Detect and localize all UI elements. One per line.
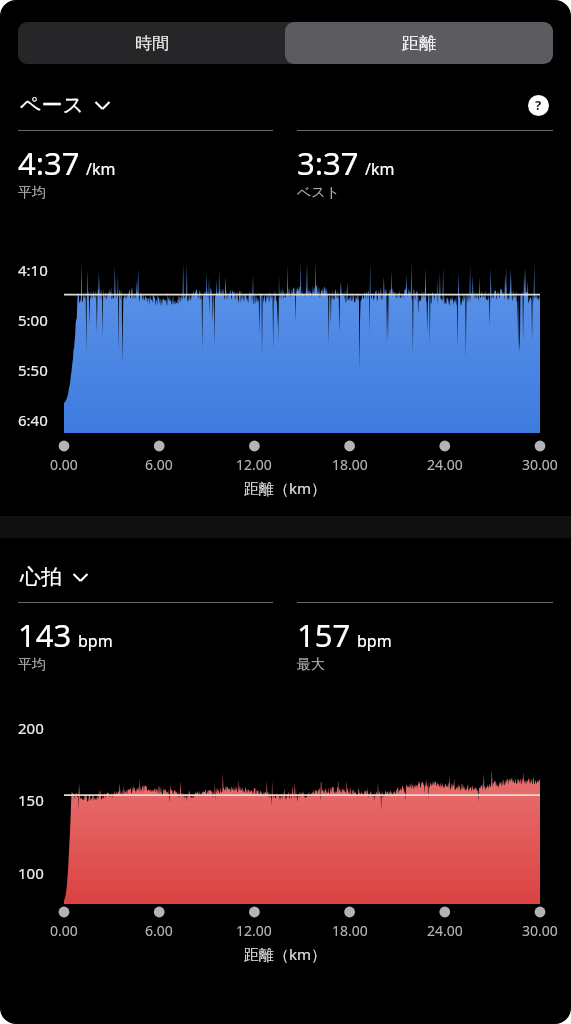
staticText: 0.00 xyxy=(50,455,78,474)
staticText: ベスト xyxy=(297,184,340,202)
staticText: ペース xyxy=(20,92,84,118)
staticText: 6:40 xyxy=(18,410,48,430)
button[interactable]: 157 xyxy=(297,602,553,674)
staticText: bpm xyxy=(357,630,392,652)
staticText: 143 xyxy=(18,614,72,656)
button[interactable]: 4:37 xyxy=(18,130,273,202)
button[interactable]: 心拍 xyxy=(18,560,91,594)
button[interactable]: 距離 xyxy=(285,22,553,64)
staticText: 5:00 xyxy=(18,310,48,330)
staticText: 6.00 xyxy=(145,455,173,474)
button[interactable]: 時間 xyxy=(18,22,285,64)
staticText: 4:37 xyxy=(18,142,80,184)
staticText: 時間 xyxy=(135,33,169,54)
staticText: 12.00 xyxy=(236,455,272,474)
staticText: 平均 xyxy=(18,184,46,202)
staticText: 3:37 xyxy=(297,142,359,184)
staticText: 18.00 xyxy=(332,921,368,940)
button[interactable]: Help xyxy=(523,90,553,120)
staticText: 4:10 xyxy=(18,260,48,280)
staticText: bpm xyxy=(78,630,113,652)
staticText: 150 xyxy=(18,790,44,810)
staticText: 30.00 xyxy=(522,921,558,940)
staticText: 12.00 xyxy=(236,921,272,940)
staticText: 200 xyxy=(18,718,44,738)
staticText: 5:50 xyxy=(18,360,48,380)
staticText: 6.00 xyxy=(145,921,173,940)
staticText: 157 xyxy=(297,614,351,656)
button[interactable]: 143 xyxy=(18,602,273,674)
staticText: 距離（km） xyxy=(244,944,327,964)
button[interactable]: ペース xyxy=(18,88,113,122)
staticText: 0.00 xyxy=(50,921,78,940)
staticText: 距離（km） xyxy=(244,478,327,498)
staticText: 30.00 xyxy=(522,455,558,474)
button[interactable]: 3:37 xyxy=(297,130,553,202)
staticText: /km xyxy=(365,158,395,180)
staticText: 最大 xyxy=(297,656,325,674)
staticText: ? xyxy=(535,96,542,114)
staticText: 平均 xyxy=(18,656,46,674)
staticText: 距離 xyxy=(402,33,436,54)
staticText: 24.00 xyxy=(427,455,463,474)
staticText: /km xyxy=(86,158,116,180)
staticText: 18.00 xyxy=(332,455,368,474)
staticText: 24.00 xyxy=(427,921,463,940)
staticText: 心拍 xyxy=(20,564,62,590)
staticText: 100 xyxy=(18,863,44,883)
